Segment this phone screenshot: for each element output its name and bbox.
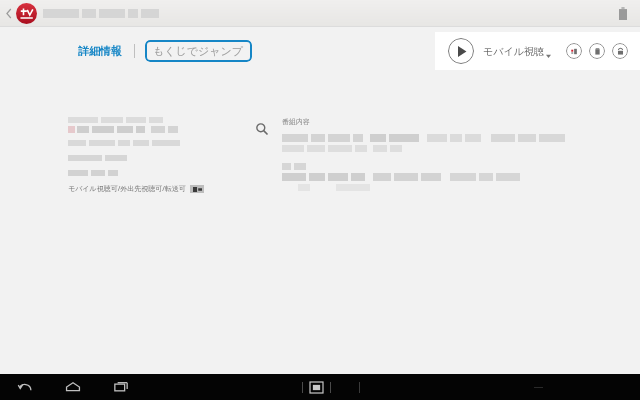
button[interactable]: Battery bbox=[614, 4, 632, 22]
button[interactable]: Screen mode bbox=[309, 380, 324, 395]
button[interactable]: Delete bbox=[589, 43, 605, 59]
staticText: 番組内容 bbox=[282, 117, 310, 126]
staticText: モバイル視聴可/外出先視聴可/転送可 bbox=[68, 184, 186, 194]
button[interactable]: もくじでジャンプ bbox=[145, 40, 252, 62]
button[interactable]: Recents bbox=[108, 374, 134, 400]
button[interactable]: Back bbox=[3, 3, 15, 23]
button[interactable]: Back bbox=[12, 374, 38, 400]
button[interactable]: Hide bbox=[528, 380, 548, 394]
button[interactable]: Lock bbox=[612, 43, 628, 59]
staticText: モバイル視聴 bbox=[483, 45, 544, 58]
button[interactable]: Search bbox=[252, 119, 272, 139]
staticText: もくじでジャンプ bbox=[153, 44, 244, 58]
button[interactable]: 詳細情報 bbox=[76, 38, 124, 64]
button[interactable]: Home bbox=[60, 374, 86, 400]
button[interactable]: App logo bbox=[16, 3, 37, 24]
button[interactable]: モバイル視聴 bbox=[483, 45, 551, 58]
button[interactable]: Transfer bbox=[566, 43, 582, 59]
button[interactable]: Play bbox=[448, 38, 474, 64]
staticText: 詳細情報 bbox=[78, 44, 122, 58]
